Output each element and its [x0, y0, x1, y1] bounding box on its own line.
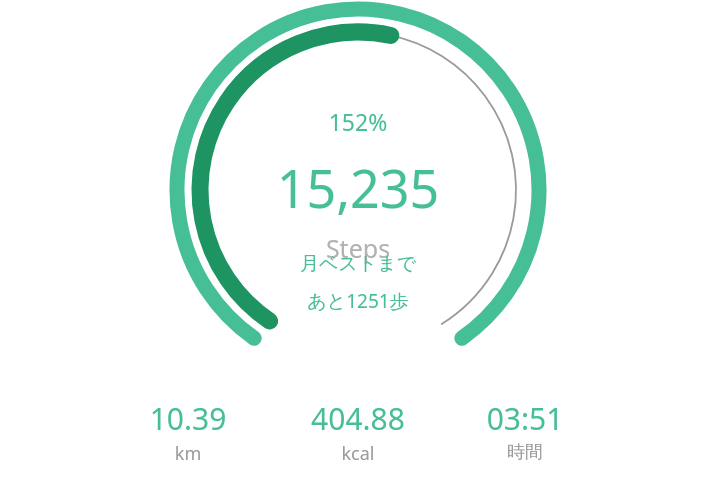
- button[interactable]: 404.88: [273, 398, 443, 439]
- staticText: km: [103, 441, 273, 466]
- staticText: 404.88: [273, 398, 443, 439]
- staticText: 時間: [440, 441, 610, 464]
- staticText: kcal: [273, 441, 443, 466]
- staticText: Steps: [198, 231, 518, 265]
- staticText: 03:51: [440, 398, 610, 439]
- staticText: 月ベストまで: [198, 252, 518, 276]
- button[interactable]: 03:51: [440, 398, 610, 439]
- staticText: 15,235: [198, 152, 518, 223]
- button[interactable]: 10.39: [103, 398, 273, 439]
- other: Step goal progress ring, 152 percent: [0, 0, 715, 477]
- staticText: あと1251歩: [198, 288, 518, 314]
- staticText: 10.39: [103, 398, 273, 439]
- staticText: 152%: [198, 106, 518, 137]
